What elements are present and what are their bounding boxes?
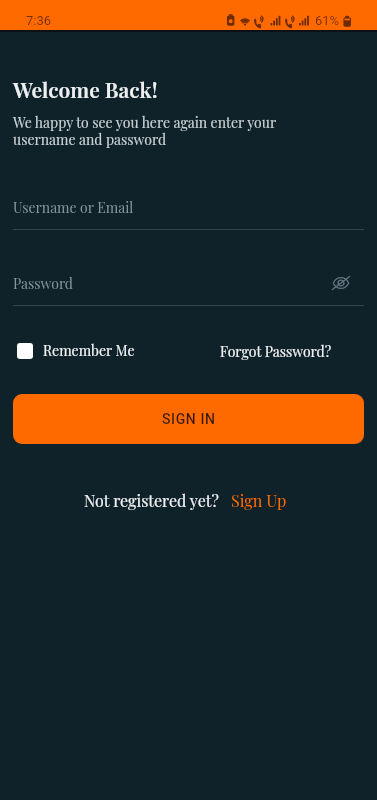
button[interactable]: Remember Me — [17, 341, 135, 360]
staticText: 61% — [315, 13, 340, 28]
staticText: 7:36 — [26, 13, 52, 28]
button[interactable]: SIGN IN — [13, 394, 364, 444]
staticText: Username or Email — [13, 198, 134, 217]
staticText: Remember Me — [43, 341, 135, 360]
staticText: Not registered yet? — [84, 490, 219, 511]
staticText: Welcome Back! — [13, 75, 158, 103]
button[interactable]: Forgot Password? — [220, 342, 332, 361]
staticText: SIGN IN — [162, 411, 216, 427]
staticText: Password — [13, 274, 73, 293]
staticText: We happy to see you here again enter you… — [13, 113, 277, 149]
button[interactable]: Sign Up — [231, 490, 287, 511]
button[interactable]: Show password — [326, 268, 355, 297]
